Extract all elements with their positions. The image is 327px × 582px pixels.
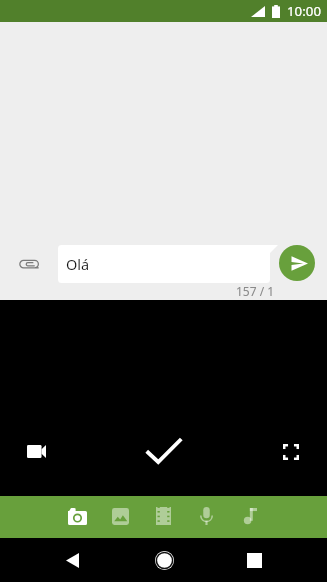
- button[interactable]: Camera: [56, 496, 99, 538]
- button[interactable]: Audio: [185, 496, 228, 538]
- button[interactable]: Record video: [18, 433, 54, 469]
- staticText: 10:00: [287, 2, 321, 20]
- button[interactable]: Back: [52, 540, 92, 580]
- staticText: Olá: [66, 254, 90, 274]
- button[interactable]: Recents: [234, 540, 274, 580]
- button[interactable]: Olá: [58, 245, 278, 283]
- button[interactable]: Accept: [141, 428, 186, 473]
- button[interactable]: Video: [142, 496, 185, 538]
- staticText: 157 / 1: [236, 283, 275, 299]
- button[interactable]: Attach: [11, 246, 48, 283]
- button[interactable]: Fullscreen: [273, 434, 309, 470]
- button[interactable]: Gallery: [99, 496, 142, 538]
- button[interactable]: Send: [279, 245, 315, 281]
- button[interactable]: Home: [144, 540, 184, 580]
- button[interactable]: Music: [228, 496, 271, 538]
